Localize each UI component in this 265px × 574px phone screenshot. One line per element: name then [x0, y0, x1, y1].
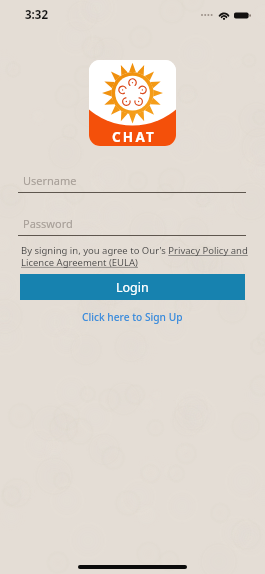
staticText: 3:32: [25, 7, 48, 23]
staticText: Login: [116, 279, 149, 296]
staticText: By signing in, you agree to Our's Privac…: [21, 244, 250, 269]
button[interactable]: Click here to Sign Up: [74, 307, 191, 327]
staticText: Password: [23, 216, 73, 231]
button[interactable]: Login: [20, 274, 245, 300]
staticText: Username: [23, 173, 77, 188]
staticText: CHAT: [112, 128, 156, 146]
staticText: Click here to Sign Up: [82, 310, 183, 324]
